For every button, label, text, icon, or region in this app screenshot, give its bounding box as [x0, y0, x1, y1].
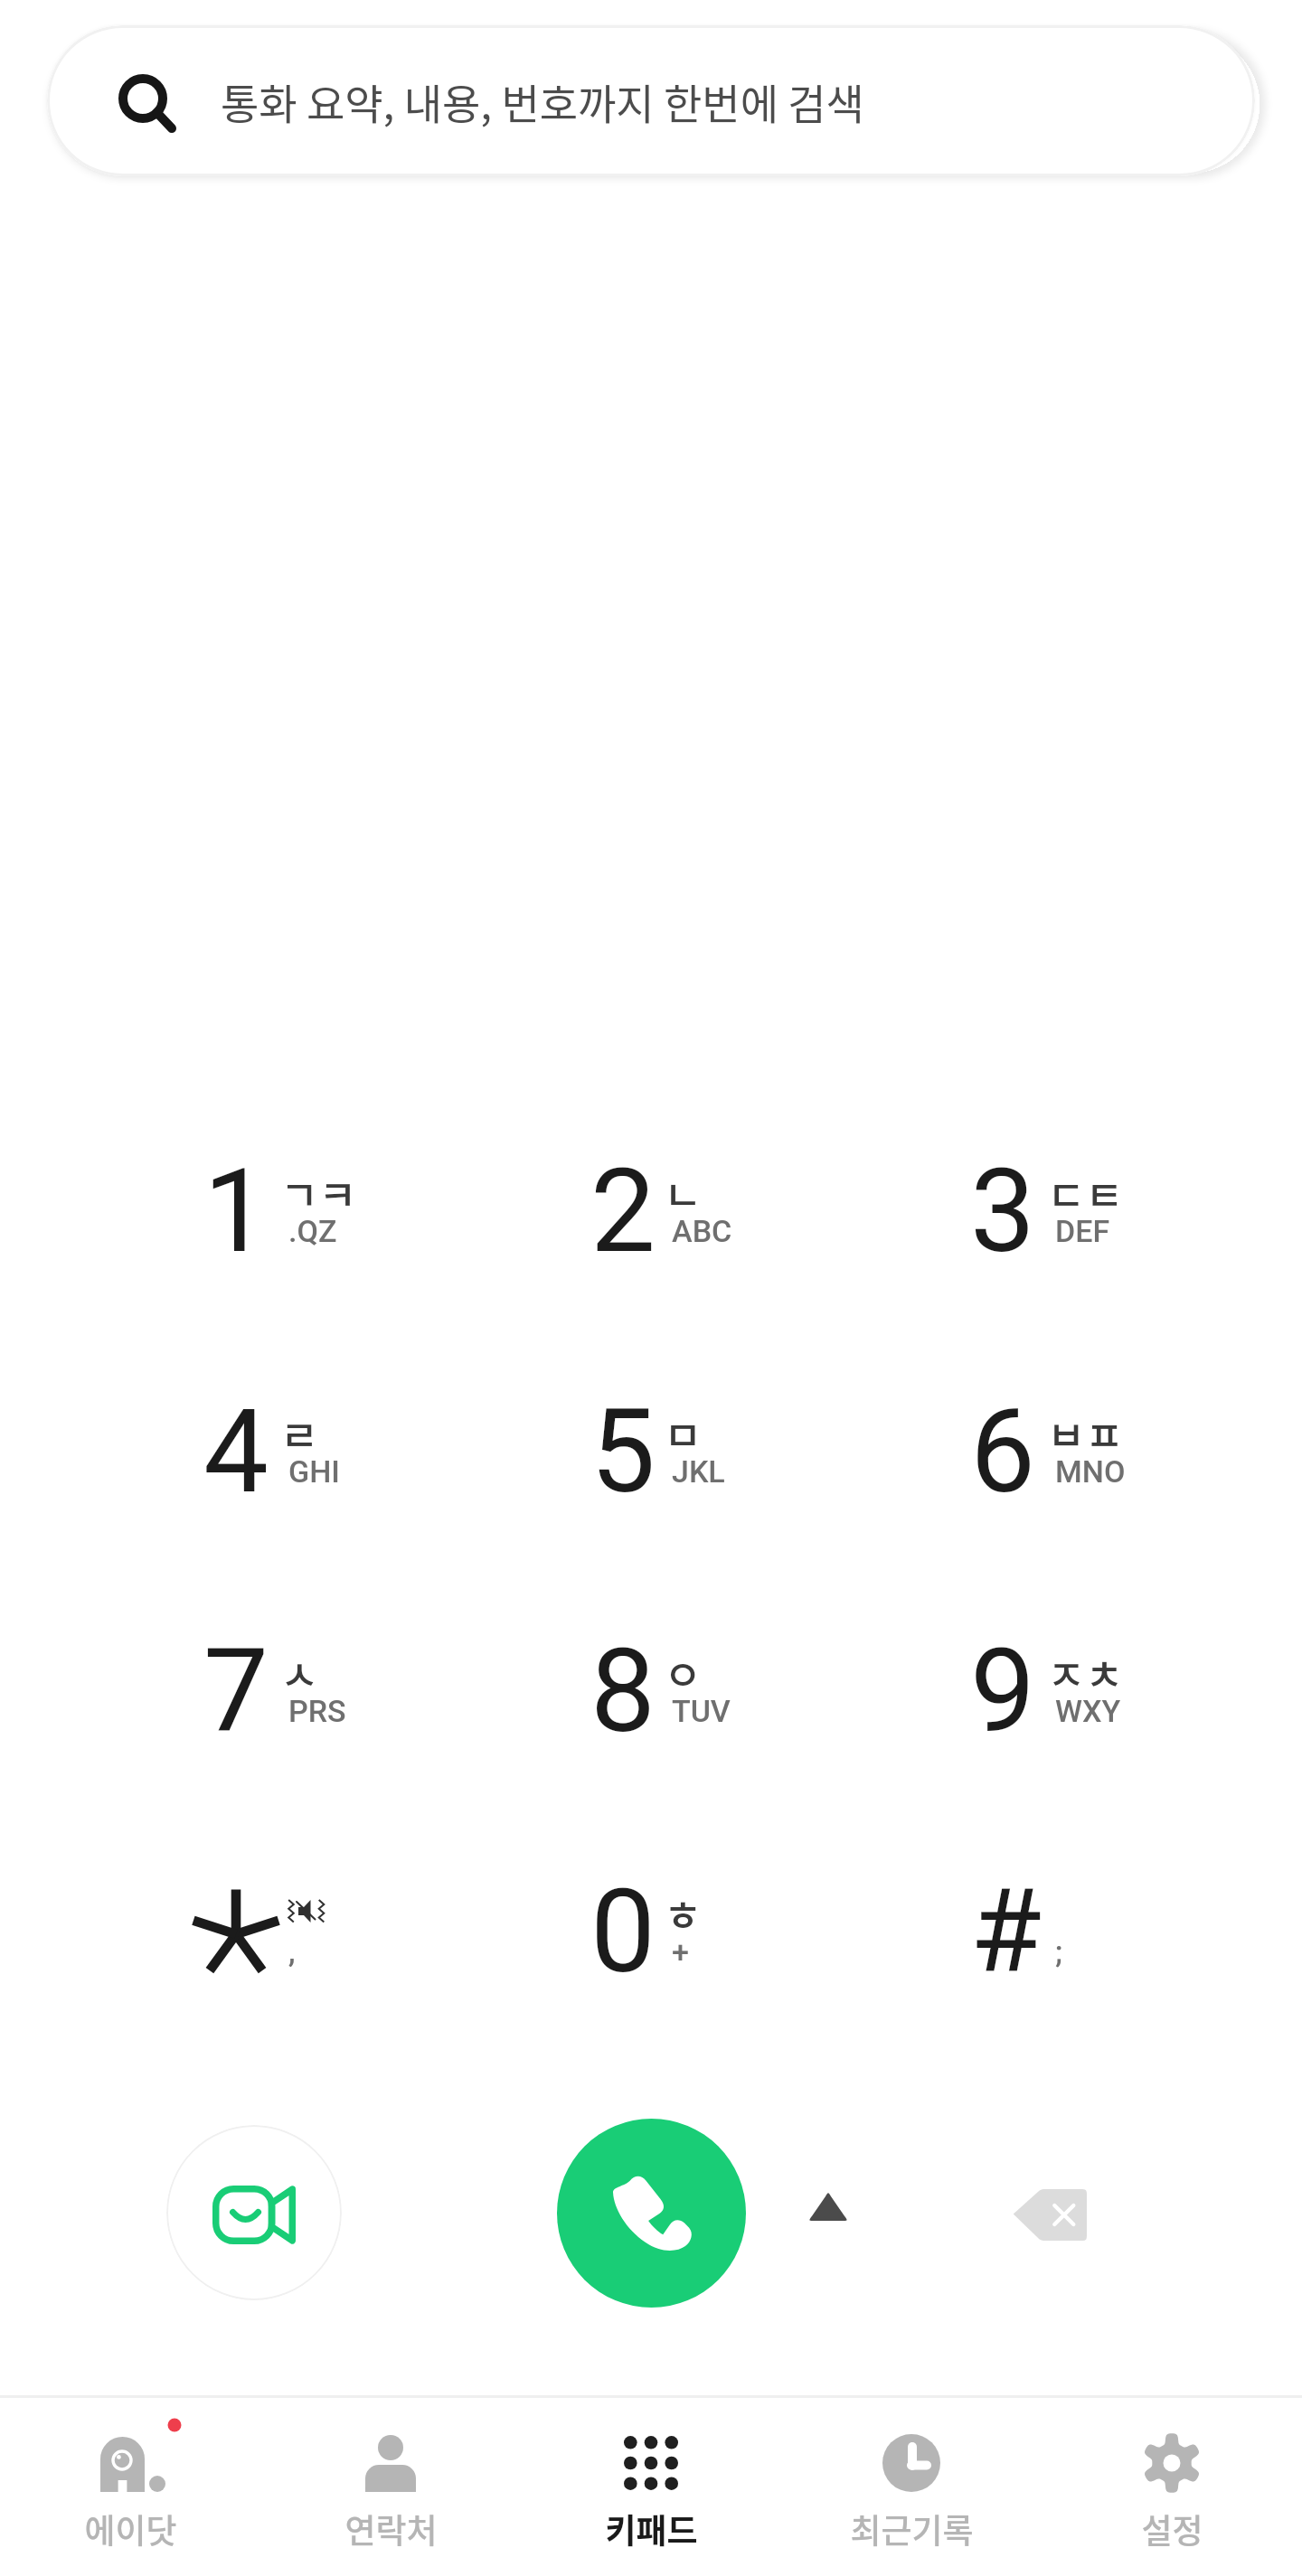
staticText: ㅂㅍ	[1047, 1403, 1124, 1463]
staticText: 설정	[1141, 2505, 1203, 2553]
staticText: ㅈㅊ	[1047, 1642, 1124, 1703]
staticText: WXY	[1055, 1693, 1121, 1729]
staticText: 5	[590, 1384, 656, 1519]
staticText: 6	[970, 1384, 1035, 1519]
staticText: ,	[288, 1933, 296, 1970]
staticText: 3	[970, 1143, 1035, 1279]
staticText: ABC	[672, 1213, 732, 1249]
staticText: #	[970, 1864, 1042, 1999]
staticText: 9	[970, 1623, 1035, 1759]
staticText: 4	[203, 1384, 269, 1519]
staticText: .QZ	[288, 1213, 337, 1249]
staticText: +	[672, 1933, 689, 1970]
button[interactable]: 6	[873, 1323, 1239, 1549]
button[interactable]: 9	[873, 1563, 1239, 1789]
button[interactable]: 7	[107, 1563, 472, 1789]
staticText: TUV	[672, 1693, 731, 1729]
button[interactable]: 키패드	[521, 2398, 781, 2576]
button[interactable]: Call	[557, 2119, 746, 2308]
button[interactable]: 4	[107, 1323, 472, 1549]
button[interactable]: 1	[107, 1083, 472, 1309]
button[interactable]: 3	[873, 1083, 1239, 1309]
button[interactable]: 0	[490, 1803, 855, 2029]
staticText: PRS	[288, 1693, 346, 1729]
staticText: MNO	[1055, 1453, 1126, 1490]
staticText: ㄷㅌ	[1047, 1162, 1124, 1223]
button[interactable]: 최근기록	[781, 2398, 1042, 2576]
staticText: 에이닷	[84, 2505, 177, 2553]
staticText: ㄱㅋ	[280, 1162, 357, 1223]
staticText: ㅅ	[280, 1642, 319, 1703]
button[interactable]: Expand dial options	[756, 2133, 901, 2278]
button[interactable]: 8	[490, 1563, 855, 1789]
staticText: ㄴ	[664, 1162, 703, 1223]
staticText: 1	[203, 1143, 269, 1279]
button[interactable]: 5	[490, 1323, 855, 1549]
staticText: ㅁ	[664, 1403, 703, 1463]
staticText: 통화 요약, 내용, 번호까지 한번에 검색	[221, 71, 864, 132]
staticText: 7	[203, 1623, 269, 1759]
staticText: 키패드	[605, 2505, 698, 2553]
staticText: JKL	[672, 1453, 725, 1490]
button[interactable]: 설정	[1042, 2398, 1302, 2576]
button[interactable]: #	[873, 1803, 1239, 2029]
staticText: 0	[590, 1864, 656, 1999]
staticText: 연락처	[344, 2505, 438, 2553]
staticText: ㄹ	[280, 1403, 319, 1463]
staticText: 2	[590, 1143, 656, 1279]
staticText: ㅇ	[664, 1642, 703, 1703]
button[interactable]: 연락처	[260, 2398, 521, 2576]
staticText: ;	[1055, 1933, 1063, 1970]
staticText: 최근기록	[850, 2505, 974, 2553]
staticText: 8	[590, 1623, 656, 1759]
staticText: ㅎ	[664, 1883, 703, 1943]
button[interactable]: 2	[490, 1083, 855, 1309]
button[interactable]: 통화 요약, 내용, 번호까지 한번에 검색	[47, 25, 1255, 176]
button[interactable]: Video call	[166, 2125, 342, 2300]
button[interactable]: 에이닷	[0, 2398, 260, 2576]
button[interactable]: Backspace	[967, 2133, 1130, 2296]
staticText: GHI	[288, 1453, 340, 1490]
staticText: DEF	[1055, 1213, 1110, 1249]
button[interactable]: *	[107, 1803, 472, 2029]
